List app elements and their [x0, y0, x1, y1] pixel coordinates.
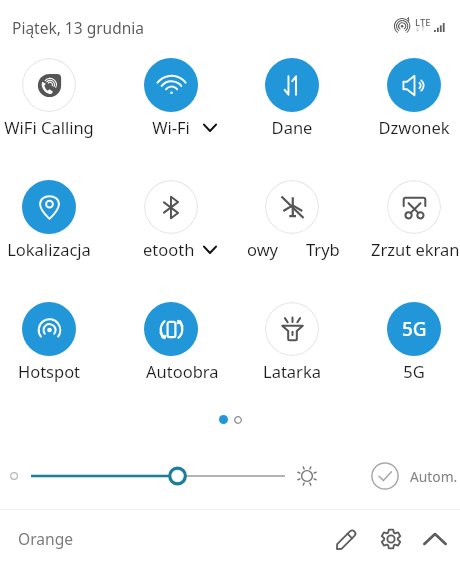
button[interactable]: WiFi Calling: [22, 58, 76, 112]
button[interactable]: Edit: [328, 521, 364, 557]
button[interactable]: etooth: [144, 180, 198, 234]
staticText: Piątek, 13 grudnia: [12, 17, 144, 38]
button[interactable]: Wi-Fi: [144, 58, 198, 112]
button[interactable]: Lokalizacja: [22, 180, 76, 234]
staticText: Autoobra: [146, 360, 219, 382]
button[interactable]: Settings: [373, 521, 409, 557]
staticText: Lokalizacja: [0, 238, 109, 260]
staticText: Hotspot: [0, 360, 109, 382]
staticText: Dane: [232, 116, 352, 138]
staticText: Zrzut ekranu: [371, 238, 460, 260]
button[interactable]: Autoobra: [144, 302, 198, 356]
staticText: owy: [247, 238, 279, 260]
staticText: Autom.: [410, 467, 458, 486]
button[interactable]: Latarka: [265, 302, 319, 356]
staticText: etooth: [143, 238, 195, 260]
staticText: Dzwonek: [354, 116, 460, 138]
button[interactable]: Autom.: [371, 462, 458, 490]
button[interactable]: Collapse: [417, 521, 453, 557]
button[interactable]: Brightness: [28, 462, 288, 490]
staticText: Orange: [18, 528, 74, 549]
staticText: WiFi Calling: [0, 116, 109, 138]
button[interactable]: owy: [265, 180, 319, 234]
button[interactable]: Zrzut ekranu: [387, 180, 441, 234]
button[interactable]: Hotspot: [22, 302, 76, 356]
staticText: Wi-Fi: [111, 116, 231, 138]
staticText: Latarka: [232, 360, 352, 382]
button[interactable]: Dane: [265, 58, 319, 112]
staticText: 5G: [402, 316, 427, 342]
button[interactable]: 5G: [387, 302, 441, 356]
staticText: Tryb: [306, 238, 340, 260]
button[interactable]: Dzwonek: [387, 58, 441, 112]
staticText: LTE: [415, 16, 431, 29]
staticText: 5G: [354, 360, 460, 382]
